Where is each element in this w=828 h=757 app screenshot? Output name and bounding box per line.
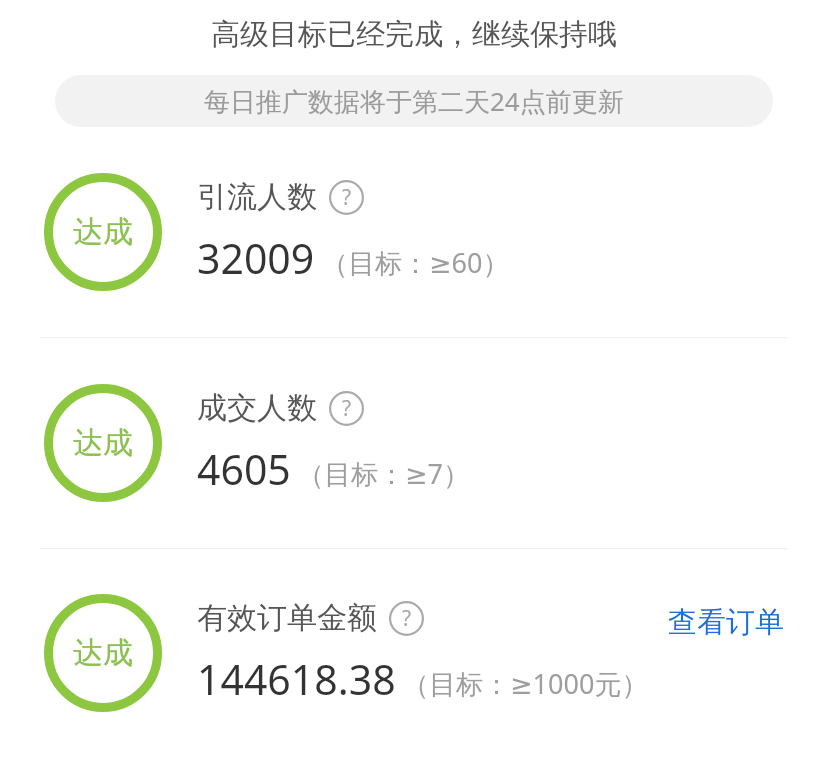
staticText: （目标：≥7） — [297, 455, 471, 492]
button[interactable]: 达成 — [0, 549, 828, 757]
staticText: 达成 — [73, 213, 133, 251]
button[interactable]: 说明 — [329, 391, 364, 426]
button[interactable]: 达成 — [0, 338, 828, 548]
staticText: 高级目标已经完成，继续保持哦 — [0, 16, 828, 53]
staticText: 32009 — [197, 230, 315, 286]
staticText: 达成 — [73, 424, 133, 462]
button[interactable]: 达成 — [0, 127, 828, 337]
staticText: ? — [402, 604, 412, 633]
staticText: ? — [342, 183, 352, 212]
staticText: ? — [342, 394, 352, 423]
button[interactable]: 查看订单 — [664, 600, 788, 645]
staticText: 达成 — [73, 634, 133, 672]
staticText: 引流人数 — [197, 178, 317, 216]
staticText: 查看订单 — [668, 604, 784, 641]
staticText: 每日推广数据将于第二天24点前更新 — [204, 83, 624, 119]
button[interactable]: 说明 — [389, 601, 424, 636]
staticText: （目标：≥1000元） — [402, 665, 649, 702]
button[interactable]: 说明 — [329, 180, 364, 215]
staticText: 成交人数 — [197, 389, 317, 427]
staticText: 144618.38 — [197, 651, 396, 707]
staticText: （目标：≥60） — [321, 244, 510, 281]
staticText: 有效订单金额 — [197, 599, 377, 637]
staticText: 4605 — [197, 441, 291, 497]
